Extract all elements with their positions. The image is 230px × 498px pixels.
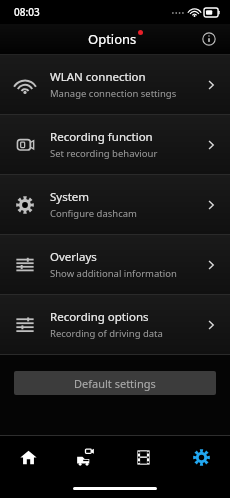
button[interactable]: Overlays <box>0 235 230 294</box>
staticText: Overlays <box>50 249 97 265</box>
button[interactable]: System <box>0 175 230 234</box>
button[interactable]: Information <box>196 26 222 52</box>
staticText: 08:03 <box>14 5 40 19</box>
staticText: Manage connection settings <box>50 87 177 100</box>
staticText: Set recording behaviour <box>50 147 158 160</box>
staticText: Show additional information <box>50 267 177 280</box>
button[interactable]: WLAN connection <box>0 55 230 114</box>
staticText: Options <box>88 30 137 48</box>
button[interactable]: Recording function <box>0 115 230 174</box>
button[interactable]: Default settings <box>14 371 216 395</box>
staticText: Recording options <box>50 309 149 325</box>
staticText: Recording function <box>50 129 153 145</box>
button[interactable]: Recordings <box>114 436 172 478</box>
button[interactable]: Settings <box>172 436 230 478</box>
staticText: Default settings <box>74 376 156 391</box>
staticText: WLAN connection <box>50 69 146 85</box>
staticText: Configure dashcam <box>50 207 137 220</box>
staticText: Recording of driving data <box>50 327 163 340</box>
staticText: System <box>50 189 90 205</box>
button[interactable]: Recording options <box>0 295 230 354</box>
button[interactable]: Home <box>0 436 57 478</box>
button[interactable]: Dashcam <box>57 436 114 478</box>
